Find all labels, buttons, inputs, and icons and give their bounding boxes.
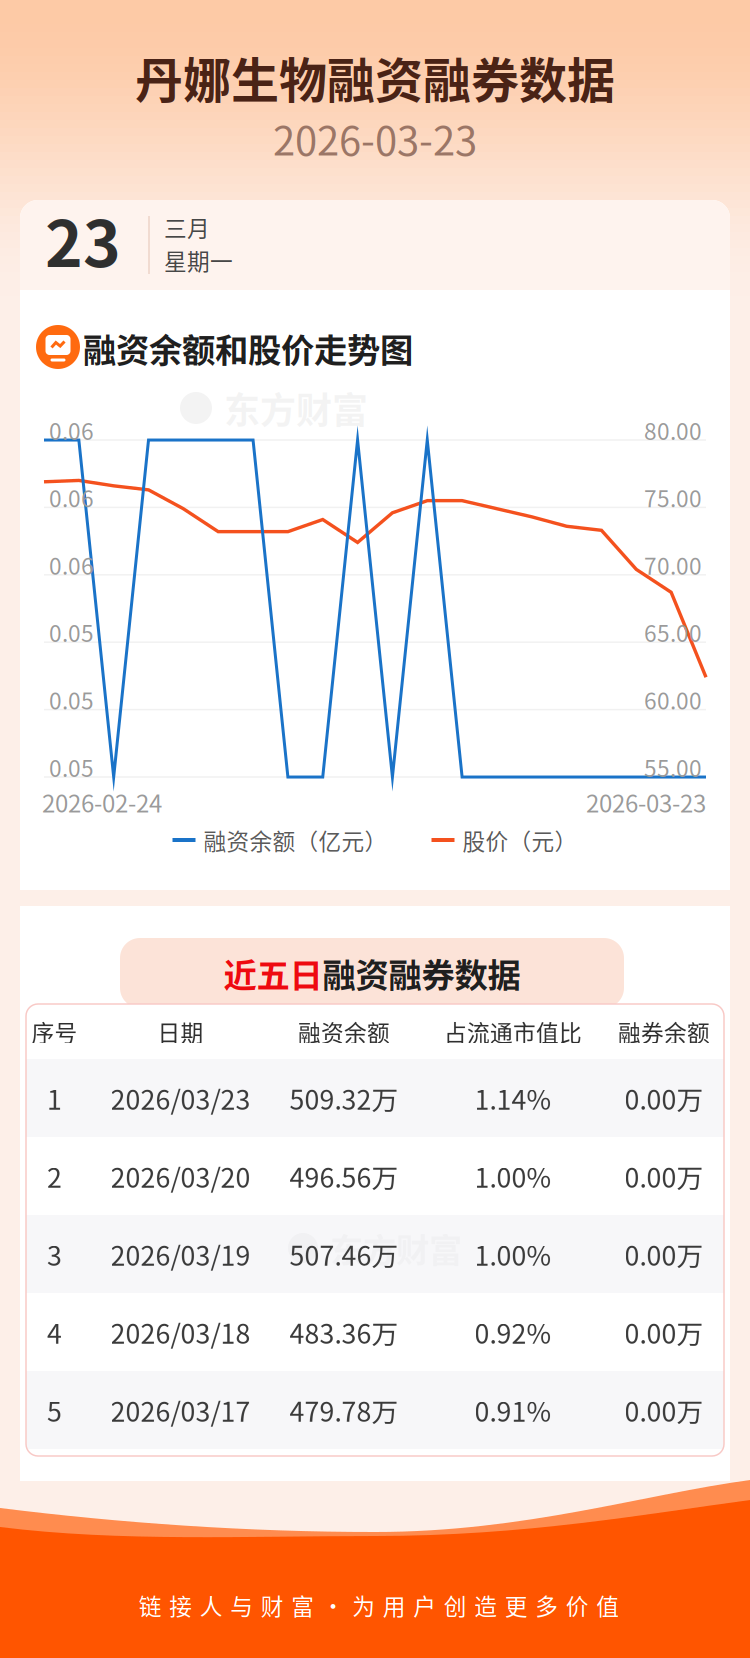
staticText: 507.46万 [289, 1235, 398, 1273]
staticText: 0.00万 [624, 1313, 703, 1351]
staticText: 60.00 [644, 683, 702, 716]
staticText: 1.14% [474, 1079, 551, 1117]
staticText: 2026-03-23 [273, 109, 477, 167]
staticText: 占流通市值比 [444, 1015, 582, 1048]
staticText: 近五日 [223, 949, 322, 997]
staticText: 2026/03/23 [111, 1079, 251, 1117]
staticText: 0.00万 [624, 1391, 703, 1429]
staticText: 日期 [158, 1015, 204, 1048]
staticText: 0.91% [474, 1391, 551, 1429]
staticText: 0.06 [49, 414, 94, 446]
staticText: 2026/03/18 [111, 1313, 251, 1351]
staticText: 0.92% [474, 1313, 551, 1351]
staticText: 0.00万 [624, 1235, 703, 1273]
staticText: 496.56万 [289, 1157, 398, 1195]
staticText: 0.05 [49, 683, 94, 716]
staticText: 55.00 [644, 751, 702, 783]
staticText: 1.00% [474, 1235, 551, 1273]
staticText: 融券余额 [618, 1015, 710, 1048]
staticText: 东方财富 [330, 1224, 462, 1272]
staticText: 479.78万 [289, 1391, 398, 1429]
staticText: 509.32万 [289, 1079, 398, 1117]
staticText: 0.00万 [624, 1079, 703, 1117]
staticText: 5 [47, 1391, 62, 1429]
staticText: 融资融券数据 [322, 949, 520, 997]
staticText: 0.05 [49, 751, 94, 783]
staticText: 链接人与财富·为用户创造更多价值 [139, 1589, 619, 1621]
staticText: 三月 [164, 211, 210, 243]
staticText: 4 [47, 1313, 62, 1351]
staticText: 2026-02-24 [42, 785, 162, 819]
staticText: 融资余额 [298, 1015, 390, 1048]
staticText: 1.00% [474, 1157, 551, 1195]
staticText: 东方财富 [224, 382, 368, 434]
staticText: 丹娜生物融资融券数据 [135, 42, 615, 112]
staticText: 483.36万 [289, 1313, 398, 1351]
staticText: 65.00 [644, 616, 702, 649]
staticText: 70.00 [644, 548, 702, 581]
staticText: 80.00 [644, 414, 702, 446]
staticText: 融资余额（亿元） [203, 824, 387, 856]
staticText: 融资余额和股价走势图 [83, 324, 413, 372]
staticText: 2026/03/19 [111, 1235, 251, 1273]
staticText: 序号 [31, 1015, 77, 1048]
staticText: 0.05 [49, 616, 94, 649]
staticText: 2026-03-23 [586, 785, 706, 819]
staticText: 星期一 [164, 244, 233, 276]
staticText: 0.06 [49, 481, 94, 514]
staticText: 23 [45, 193, 121, 285]
staticText: 0.06 [49, 548, 94, 581]
staticText: 2026/03/17 [111, 1391, 251, 1429]
staticText: 0.00万 [624, 1157, 703, 1195]
staticText: 2 [47, 1157, 62, 1195]
staticText: 股价（元） [462, 824, 577, 856]
staticText: 3 [47, 1235, 62, 1273]
staticText: 1 [47, 1079, 62, 1117]
staticText: 75.00 [644, 481, 702, 514]
staticText: 2026/03/20 [111, 1157, 251, 1195]
